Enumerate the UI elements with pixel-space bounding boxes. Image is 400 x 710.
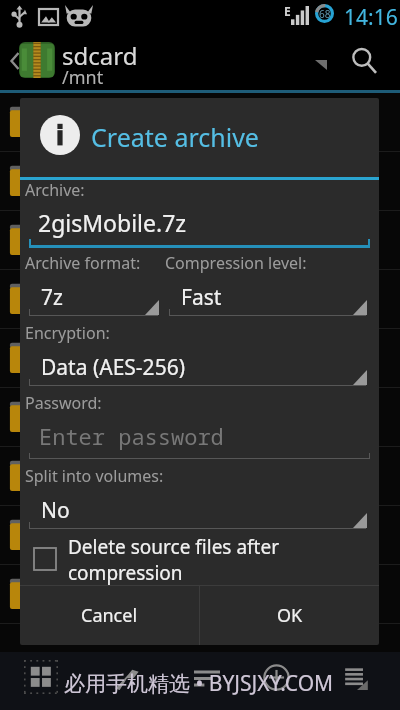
staticText: E xyxy=(284,3,291,19)
staticText: Password: xyxy=(25,392,102,414)
staticText: folder xyxy=(52,421,89,439)
staticText: folder xyxy=(52,185,89,203)
staticText: 14:16 xyxy=(344,3,398,32)
staticText: Movies xyxy=(52,396,112,421)
button[interactable]: Cancel xyxy=(20,586,199,645)
staticText: Encryption: xyxy=(25,322,110,344)
staticText: DCIM xyxy=(52,278,99,303)
button[interactable]: Select all xyxy=(19,655,63,699)
staticText: 2gisMobile.7z xyxy=(38,207,187,238)
staticText: Backups xyxy=(52,219,123,244)
staticText: folder xyxy=(52,303,89,321)
staticText: Cancel xyxy=(81,603,138,628)
button[interactable]: OK xyxy=(200,586,379,645)
staticText: Enter password xyxy=(39,421,224,451)
button[interactable]: Sort xyxy=(185,655,229,699)
staticText: Podcasts xyxy=(52,573,128,598)
staticText: folder xyxy=(52,598,89,616)
staticText: OK xyxy=(277,603,303,628)
button[interactable]: Add xyxy=(254,655,298,699)
button[interactable]: Search xyxy=(346,43,382,79)
staticText: Data (AES-256) xyxy=(41,353,185,382)
staticText: Archive format: xyxy=(25,252,141,274)
staticText: /mnt xyxy=(62,65,104,90)
button[interactable]: Fast xyxy=(165,283,370,316)
button[interactable]: Tools xyxy=(105,655,149,699)
staticText: AppProjects xyxy=(52,160,154,185)
staticText: Android xyxy=(52,101,120,126)
button[interactable]: Data (AES-256) xyxy=(25,353,370,386)
staticText: Fast xyxy=(181,283,222,312)
staticText: No xyxy=(41,496,70,525)
button[interactable]: No xyxy=(25,496,370,529)
staticText: 68 xyxy=(319,7,331,21)
button[interactable]: 7z xyxy=(25,283,162,316)
button[interactable]: Delete source files after compression xyxy=(23,533,373,585)
staticText: Create archive xyxy=(91,120,259,154)
staticText: Split into volumes: xyxy=(25,465,164,487)
staticText: folder xyxy=(52,480,89,498)
staticText: Download xyxy=(52,337,138,362)
button[interactable]: More options xyxy=(334,655,378,699)
staticText: folder xyxy=(52,244,89,262)
staticText: Music xyxy=(52,455,102,480)
staticText: folder xyxy=(52,539,89,557)
staticText: sdcard xyxy=(62,39,138,72)
staticText: folder xyxy=(52,362,89,380)
staticText: Delete source files after compression xyxy=(68,534,280,585)
button[interactable]: Enter password xyxy=(25,421,370,458)
button[interactable]: Up xyxy=(2,46,28,76)
staticText: Archive: xyxy=(25,179,85,201)
staticText: Pictures xyxy=(52,514,120,539)
staticText: Compression level: xyxy=(165,252,307,274)
staticText: folder xyxy=(52,126,89,144)
staticText: 必用手机精选 • BYJSJXY.COM xyxy=(64,669,334,698)
staticText: 7z xyxy=(41,283,63,312)
